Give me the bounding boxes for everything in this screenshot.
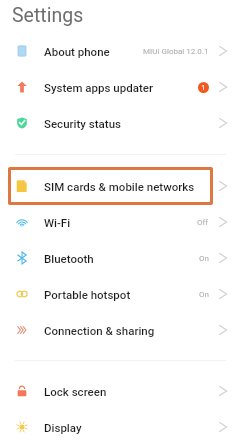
button[interactable]: Security status	[0, 105, 241, 141]
staticText: Bluetooth	[44, 252, 94, 265]
staticText: SIM cards & mobile networks	[44, 180, 195, 193]
staticText: On	[199, 290, 209, 299]
button[interactable]: Portable hotspot	[0, 276, 241, 312]
button[interactable]: Bluetooth	[0, 240, 241, 276]
staticText: Security status	[44, 117, 121, 130]
staticText: Off	[197, 218, 209, 227]
button[interactable]: Connection & sharing	[0, 312, 241, 348]
staticText: Settings	[12, 4, 84, 27]
staticText: On	[199, 254, 209, 263]
button[interactable]: System apps updater	[0, 69, 241, 105]
staticText: MIUI Global 12.0.1	[143, 47, 209, 56]
staticText: Display	[44, 421, 82, 434]
staticText: Lock screen	[44, 385, 107, 398]
staticText: 1	[201, 83, 206, 93]
button[interactable]: Lock screen	[0, 373, 241, 409]
staticText: Portable hotspot	[44, 288, 131, 301]
button[interactable]: SIM cards & mobile networks	[0, 168, 241, 204]
staticText: Connection & sharing	[44, 324, 155, 337]
staticText: Wi-Fi	[44, 216, 71, 229]
staticText: About phone	[44, 45, 110, 58]
button[interactable]: Wi-Fi	[0, 204, 241, 240]
button[interactable]: About phone	[0, 33, 241, 69]
button[interactable]: Display	[0, 409, 241, 445]
staticText: System apps updater	[44, 81, 153, 94]
